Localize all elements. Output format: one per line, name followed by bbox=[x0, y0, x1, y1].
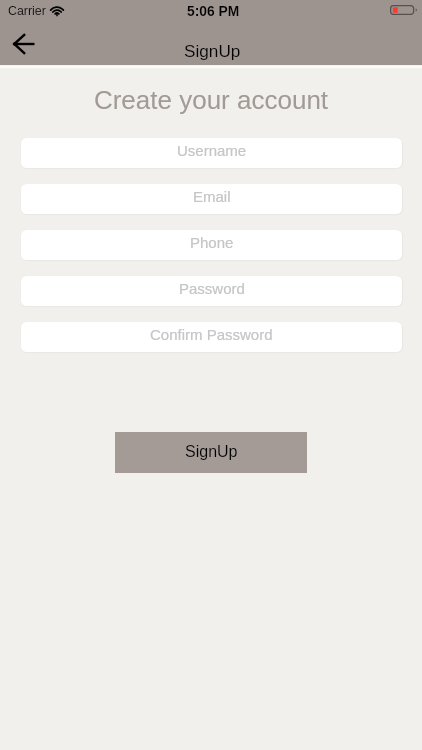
staticText: Create your account bbox=[0, 85, 422, 114]
staticText: SignUp bbox=[184, 41, 241, 60]
staticText: Carrier bbox=[8, 4, 46, 18]
button[interactable]: Password bbox=[21, 276, 402, 306]
staticText: 5:06 PM bbox=[187, 4, 240, 19]
button[interactable]: Back bbox=[0, 22, 46, 66]
staticText: SignUp bbox=[185, 443, 238, 461]
staticText: Confirm Password bbox=[150, 326, 273, 343]
button[interactable]: Username bbox=[21, 138, 402, 168]
staticText: Password bbox=[179, 280, 245, 297]
button[interactable]: Phone bbox=[21, 230, 402, 260]
staticText: Email bbox=[193, 188, 231, 205]
staticText: Phone bbox=[190, 234, 234, 251]
button[interactable]: SignUp bbox=[115, 432, 307, 473]
staticText: Username bbox=[177, 142, 247, 159]
button[interactable]: Email bbox=[21, 184, 402, 214]
button[interactable]: Confirm Password bbox=[21, 322, 402, 352]
